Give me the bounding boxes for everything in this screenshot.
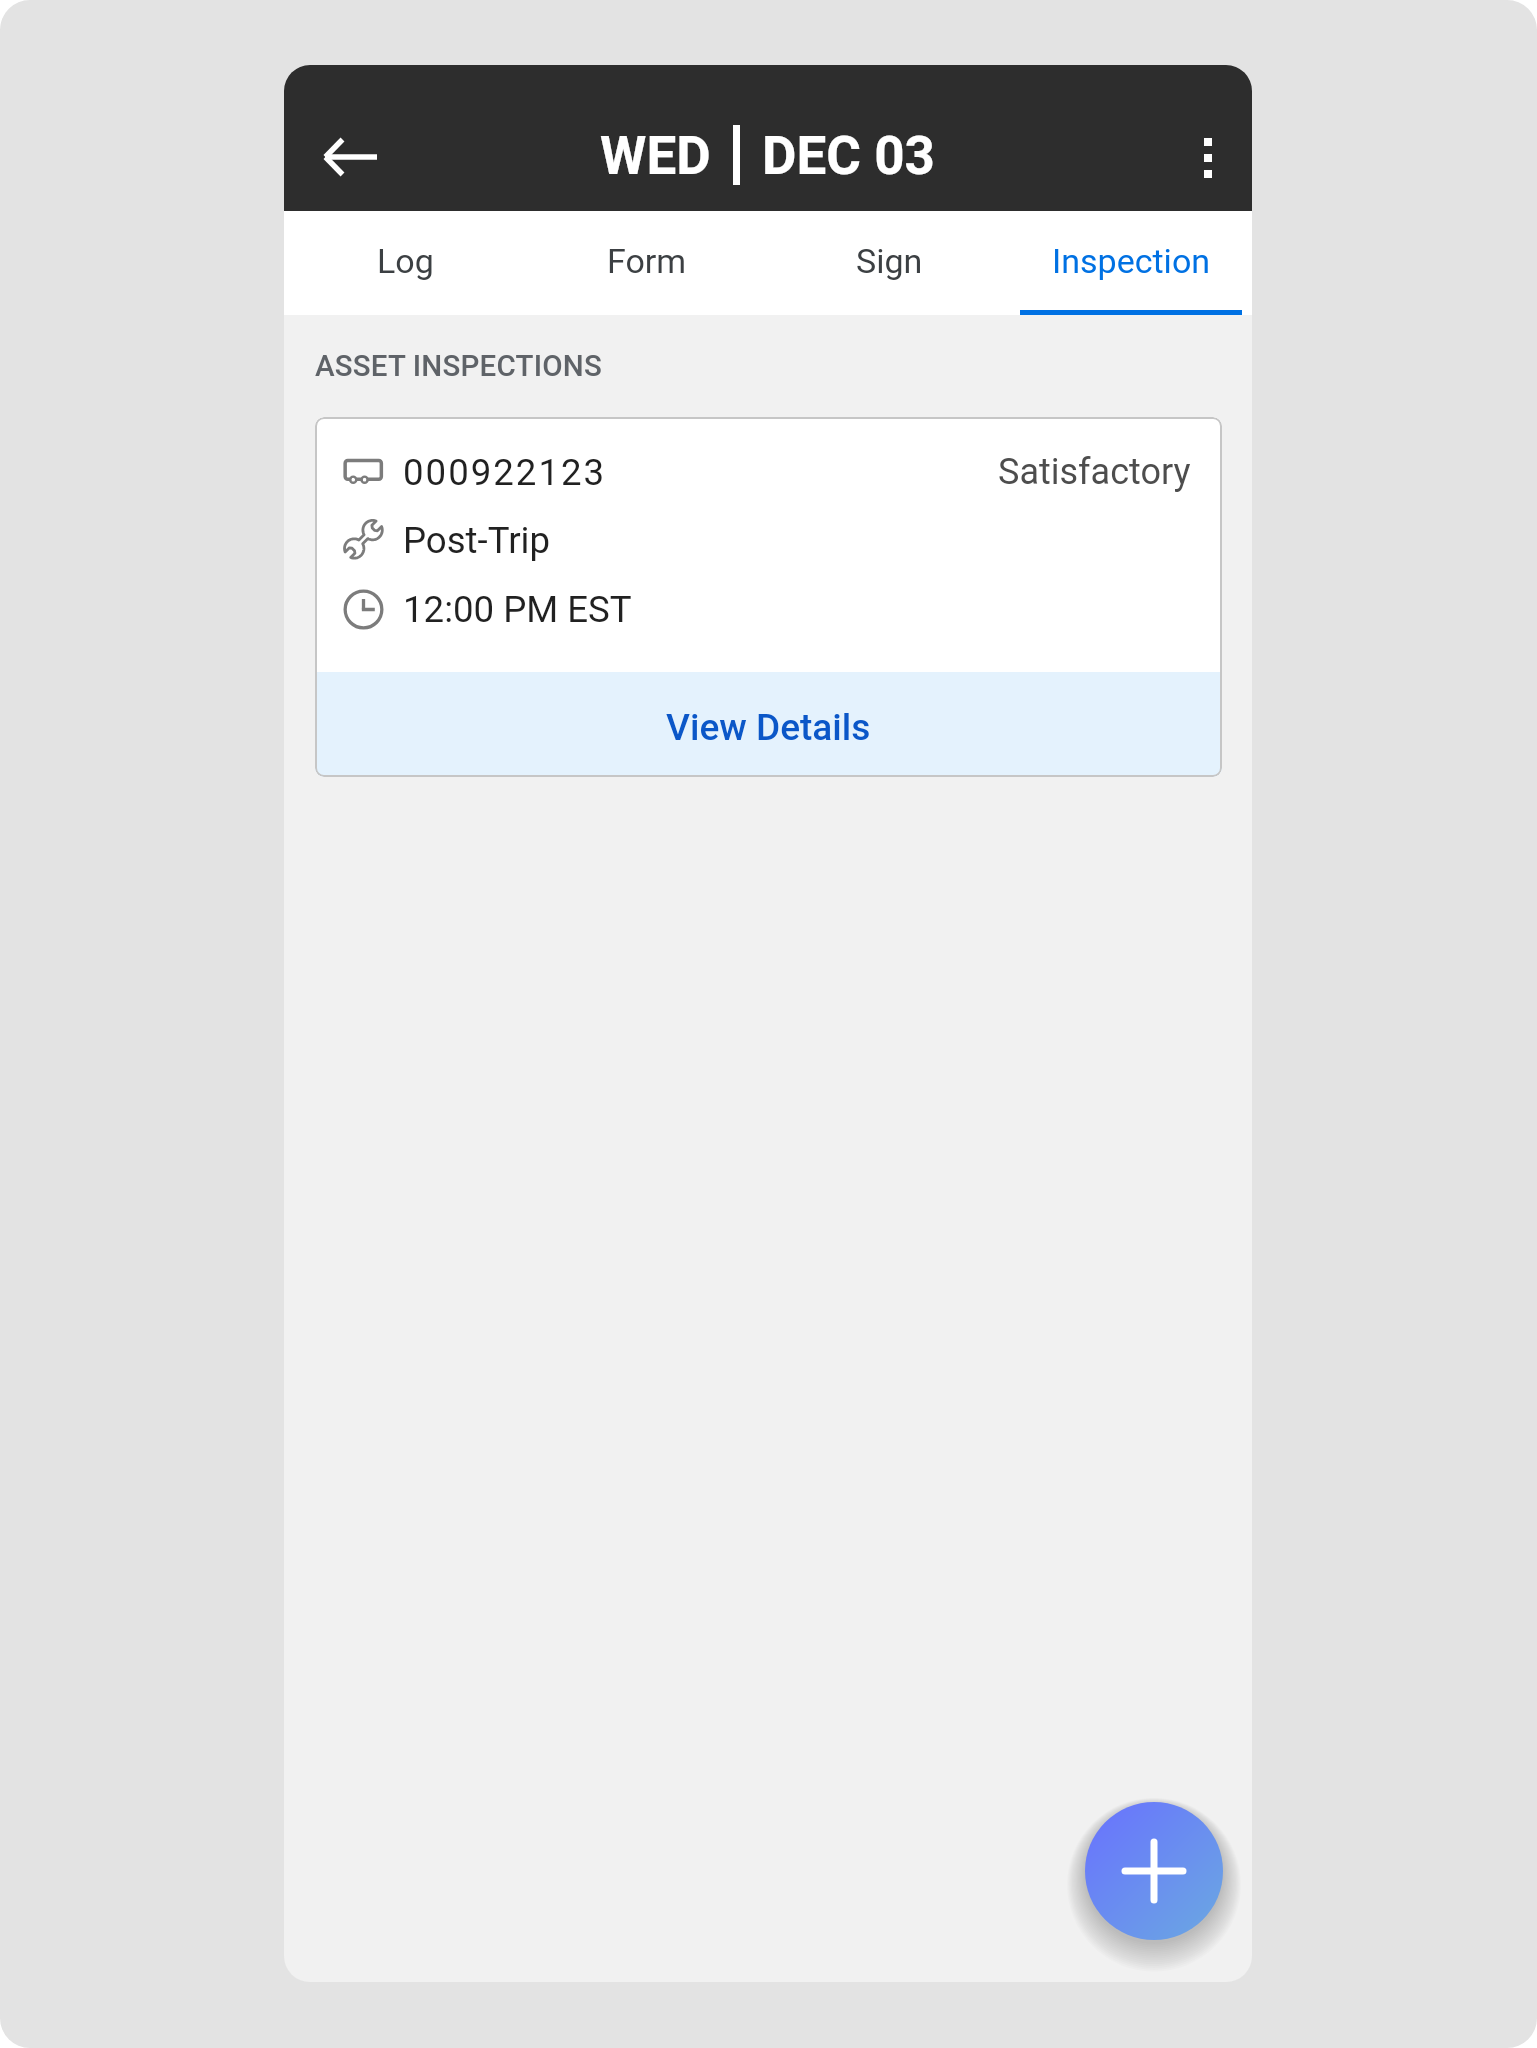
staticText: Satisfactory [998, 451, 1191, 493]
staticText: DEC 03 [762, 125, 936, 187]
staticText: 12:00 PM EST [403, 588, 632, 631]
button[interactable]: Back [312, 118, 390, 196]
staticText: Post-Trip [403, 519, 551, 562]
button[interactable]: View Details [315, 672, 1222, 777]
staticText: ASSET INSPECTIONS [315, 349, 602, 384]
button[interactable]: Form [526, 211, 768, 315]
button[interactable]: Log [284, 211, 526, 315]
staticText: Sign [856, 241, 923, 281]
button[interactable]: Inspection [1010, 211, 1252, 315]
staticText: 000922123 [403, 451, 607, 494]
staticText: WED [600, 125, 711, 187]
button[interactable]: Add inspection [1085, 1802, 1223, 1940]
staticText: Inspection [1052, 241, 1211, 281]
staticText: Log [377, 241, 434, 281]
staticText: Form [607, 241, 687, 281]
button[interactable]: More options [1168, 118, 1248, 198]
staticText: View Details [666, 706, 871, 749]
button[interactable]: Sign [768, 211, 1010, 315]
